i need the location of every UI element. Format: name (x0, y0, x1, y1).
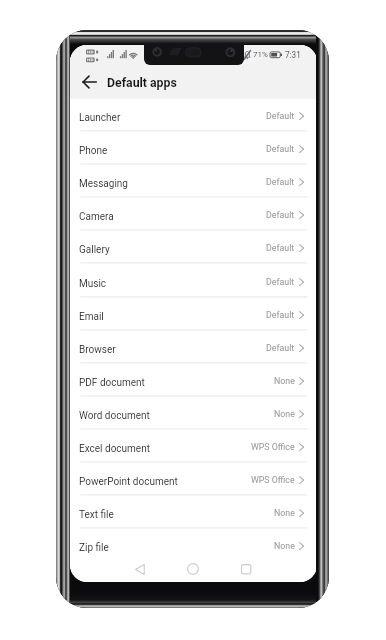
button[interactable]: Messaging (70, 165, 317, 198)
staticText: Default (266, 310, 295, 320)
staticText: Default (266, 144, 295, 154)
staticText: Phone (79, 145, 108, 157)
staticText: WPS Office (251, 442, 295, 452)
staticText: Default (266, 177, 295, 187)
staticText: Email (79, 311, 104, 323)
staticText: Word document (79, 410, 150, 422)
staticText: None (274, 541, 295, 551)
button[interactable]: Gallery (70, 231, 317, 264)
staticText: 7:31 (285, 50, 301, 60)
staticText: None (274, 508, 295, 518)
button[interactable]: PDF document (70, 364, 317, 397)
staticText: Camera (79, 211, 114, 223)
staticText: Text file (79, 509, 114, 521)
button[interactable]: Launcher (70, 99, 317, 132)
button[interactable]: Zip file (70, 529, 317, 562)
staticText: 71% (253, 50, 268, 59)
staticText: Zip file (79, 542, 109, 554)
button[interactable]: Recents (232, 555, 260, 582)
staticText: None (274, 409, 295, 419)
staticText: Default (266, 243, 295, 253)
staticText: Gallery (79, 244, 110, 256)
staticText: Music (79, 278, 107, 290)
staticText: Messaging (79, 178, 128, 190)
button[interactable]: Camera (70, 198, 317, 231)
staticText: Browser (79, 344, 116, 356)
button[interactable]: Phone (70, 132, 317, 165)
staticText: Default apps (107, 76, 177, 90)
staticText: Default (266, 277, 295, 287)
staticText: WPS Office (251, 475, 295, 485)
staticText: Default (266, 210, 295, 220)
button[interactable]: Music (70, 265, 317, 298)
button[interactable]: Excel document (70, 430, 317, 463)
button[interactable]: Text file (70, 496, 317, 529)
staticText: Launcher (79, 112, 121, 124)
button[interactable]: Word document (70, 397, 317, 430)
button[interactable]: PowerPoint document (70, 463, 317, 496)
button[interactable]: Back (126, 555, 154, 582)
button[interactable]: Email (70, 298, 317, 331)
button[interactable]: Back (75, 68, 103, 96)
staticText: None (274, 376, 295, 386)
staticText: Excel document (79, 443, 150, 455)
staticText: PDF document (79, 377, 145, 389)
staticText: PowerPoint document (79, 476, 178, 488)
staticText: Default (266, 111, 295, 121)
button[interactable]: Browser (70, 331, 317, 364)
staticText: Default (266, 343, 295, 353)
button[interactable]: Home (179, 555, 207, 582)
